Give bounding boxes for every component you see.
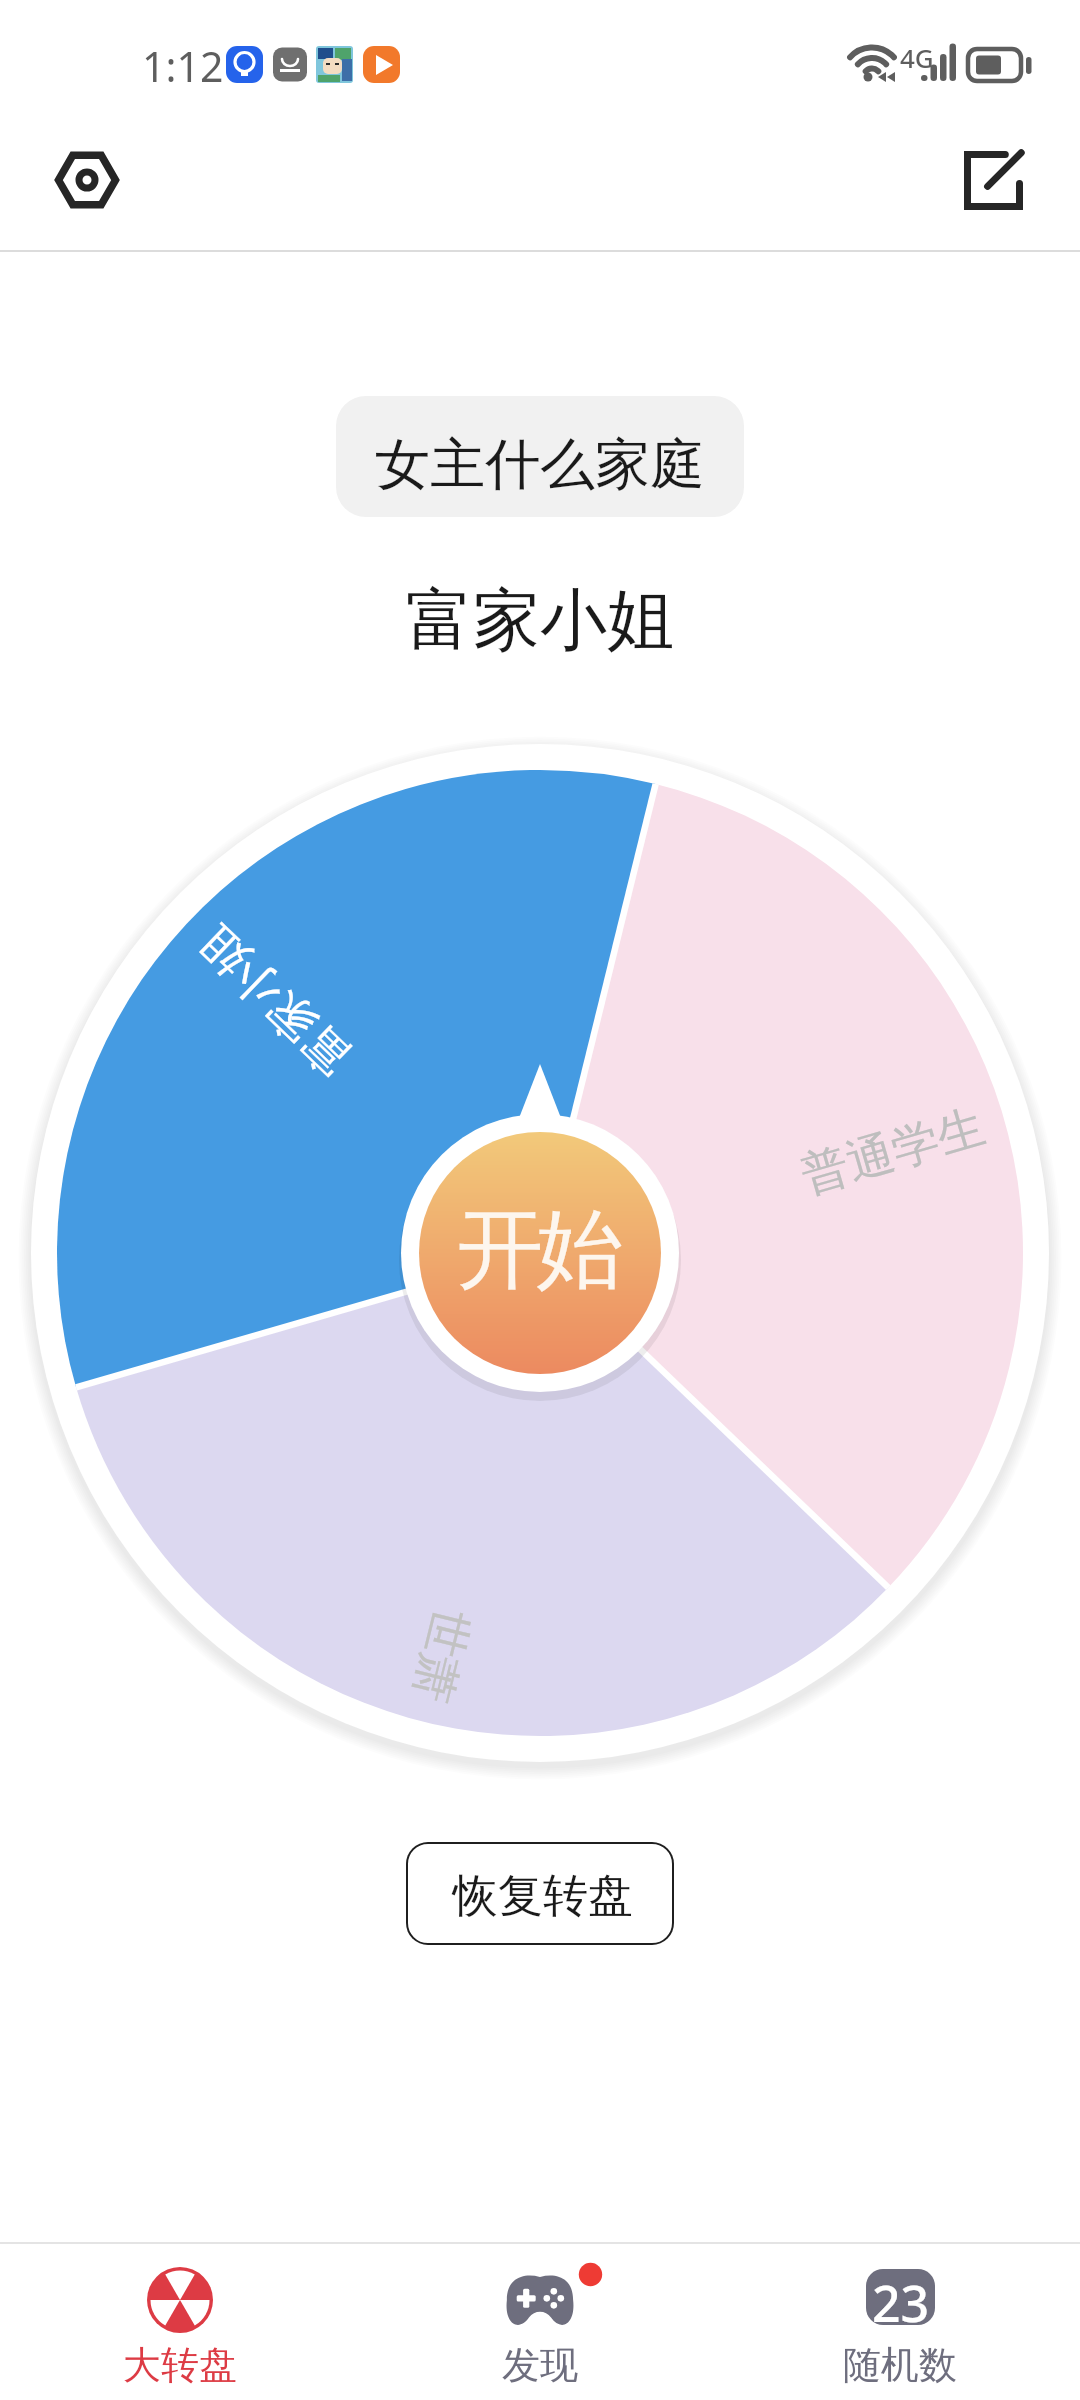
staticText: 发现 <box>502 2341 578 2389</box>
staticText: 普通学生 <box>794 1097 991 1206</box>
button[interactable]: 恢复转盘 <box>406 1842 674 1945</box>
button[interactable]: 开始 <box>419 1132 661 1374</box>
staticText: 恢复转盘 <box>453 1868 633 1925</box>
staticText: 23 <box>872 2269 930 2325</box>
staticText: 随机数 <box>843 2341 957 2389</box>
button[interactable]: 女主什么家庭 <box>336 396 744 517</box>
button[interactable]: Settings <box>33 126 141 234</box>
button[interactable]: 大转盘 <box>0 2244 360 2400</box>
staticText: 开始 <box>460 1195 620 1305</box>
staticText: 富家小姐 <box>187 913 363 1086</box>
button[interactable]: 23 <box>720 2244 1080 2400</box>
staticText: 4G <box>900 40 934 75</box>
staticText: 女主什么家庭 <box>375 430 705 499</box>
button[interactable]: Edit <box>939 126 1047 234</box>
staticText: 1:12 <box>142 38 224 94</box>
staticText: 大转盘 <box>123 2341 237 2389</box>
staticText: 富家小姐 <box>406 578 674 662</box>
button[interactable]: 发现 <box>360 2244 720 2400</box>
staticText: 世萧 <box>401 1603 481 1708</box>
